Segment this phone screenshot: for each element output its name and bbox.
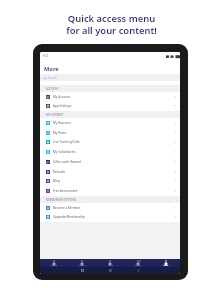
button[interactable]: Upgrade Membership	[40, 212, 180, 222]
button[interactable]: Recents	[76, 267, 88, 274]
staticText: More	[163, 264, 169, 267]
button[interactable]: Home	[104, 267, 116, 274]
button[interactable]: More	[152, 260, 180, 267]
staticText: Quick access menu for all your content!	[66, 12, 157, 37]
staticText: My Business	[53, 121, 72, 125]
staticText: My Rates	[53, 131, 67, 135]
button[interactable]: My Account	[40, 92, 180, 102]
staticText: More	[44, 65, 59, 73]
staticText: My Account	[53, 95, 70, 99]
button[interactable]: Live Tracking/Calls	[40, 137, 180, 147]
staticText: Offers with Reward	[53, 160, 81, 164]
staticText: ACCOUNT	[46, 87, 59, 91]
button[interactable]: Home	[40, 260, 68, 267]
button[interactable]: Offers with Reward	[40, 157, 180, 167]
staticText: Live Tracking/Calls	[53, 140, 80, 144]
staticText: My Subsidiaries	[53, 150, 76, 154]
staticText: Shop	[108, 264, 113, 267]
staticText: News	[79, 264, 85, 267]
staticText: Alerts	[135, 264, 141, 267]
staticText: MEMBERSHIP OPTIONS	[46, 198, 77, 202]
button[interactable]: Alerts	[124, 260, 152, 267]
button[interactable]: My Business	[40, 118, 180, 128]
staticText: Free Assessment	[53, 189, 78, 193]
staticText: Search	[48, 76, 57, 80]
staticText: Blog	[53, 179, 60, 183]
button[interactable]: Become a Member	[40, 203, 180, 213]
staticText: 9:41	[43, 54, 49, 58]
button[interactable]: Refunds	[40, 167, 180, 177]
button[interactable]: Blog	[40, 176, 180, 186]
staticText: Become a Member	[53, 206, 81, 210]
staticText: App Settings	[53, 104, 72, 108]
button[interactable]: Back	[132, 267, 144, 274]
staticText: Upgrade Membership	[53, 215, 85, 219]
button[interactable]: Shop	[96, 260, 124, 267]
staticText: Refunds	[53, 170, 65, 174]
button[interactable]: Search	[40, 74, 180, 81]
button[interactable]: My Subsidiaries	[40, 147, 180, 157]
button[interactable]: Free Assessment	[40, 186, 180, 196]
button[interactable]: App Settings	[40, 101, 180, 111]
staticText: MY CONTENT	[46, 113, 64, 117]
staticText: Home	[51, 264, 57, 267]
button[interactable]: My Rates	[40, 128, 180, 138]
button[interactable]: News	[68, 260, 96, 267]
